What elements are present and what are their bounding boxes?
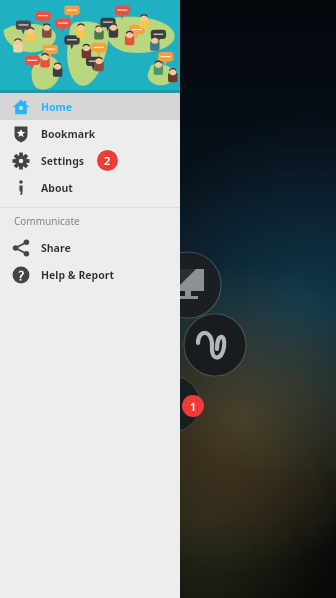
staticText: Bookmark: [41, 127, 96, 141]
button[interactable]: 1 notification: [182, 395, 204, 417]
staticText: Help & Report: [41, 268, 115, 282]
button[interactable]: Home: [0, 93, 180, 120]
staticText: 2: [104, 153, 111, 168]
button[interactable]: Settings: [0, 147, 180, 174]
staticText: Settings: [41, 154, 85, 168]
button[interactable]: Help & Report: [0, 261, 180, 288]
staticText: Home: [41, 100, 73, 114]
button[interactable]: Share: [0, 234, 180, 261]
staticText: Communicate: [14, 214, 80, 228]
button[interactable]: About: [0, 174, 180, 201]
staticText: 1: [190, 399, 197, 414]
staticText: Share: [41, 241, 71, 255]
button[interactable]: Bookmark: [0, 120, 180, 147]
staticText: About: [41, 181, 73, 195]
